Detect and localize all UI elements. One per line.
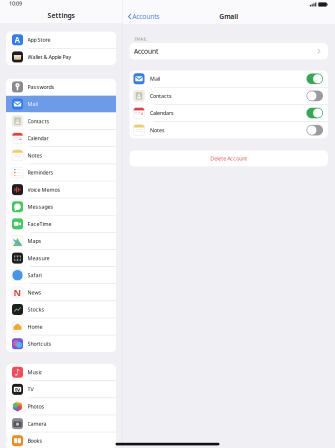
button[interactable]: Mail — [129, 70, 328, 87]
button[interactable]: ♪ — [6, 364, 116, 380]
button[interactable]: Reminders — [6, 164, 116, 181]
staticText: Reminders — [27, 169, 53, 176]
staticText: Measure — [27, 255, 49, 262]
button[interactable]: Shortcuts — [6, 335, 116, 352]
button[interactable]: Wallet & Apple Pay — [6, 49, 116, 65]
button[interactable]: Delete Account — [129, 150, 328, 166]
staticText: Wallet & Apple Pay — [27, 53, 71, 60]
button[interactable]: FaceTime — [6, 216, 116, 232]
staticText: Mail — [150, 75, 160, 82]
staticText: tv — [15, 386, 20, 393]
button[interactable]: Stocks — [6, 301, 116, 318]
staticText: Notes — [150, 127, 165, 134]
button[interactable]: Calendars — [129, 105, 328, 121]
staticText: A — [14, 34, 20, 45]
button[interactable]: Notes — [129, 122, 328, 138]
staticText: N — [13, 286, 21, 299]
button[interactable]: N — [6, 284, 116, 301]
staticText: Delete Account — [210, 155, 247, 162]
staticText: Music — [27, 369, 42, 376]
staticText: Calendars — [150, 109, 174, 117]
staticText: Voice Memos — [27, 186, 60, 193]
staticText: Messages — [27, 203, 53, 210]
staticText: Books — [27, 437, 42, 444]
button[interactable]: Accounts — [122, 8, 165, 24]
button[interactable]: Camera — [6, 415, 116, 432]
staticText: Shortcuts — [27, 340, 51, 347]
button[interactable]: Account — [129, 43, 328, 59]
button[interactable]: Books — [6, 432, 116, 448]
button[interactable]: Voice Memos — [6, 181, 116, 198]
button[interactable]: Messages — [6, 198, 116, 215]
staticText: Calendar — [27, 135, 48, 142]
button[interactable]: Measure — [6, 250, 116, 266]
staticText: Contacts — [150, 92, 172, 99]
staticText: Gmail — [219, 12, 238, 21]
staticText: Contacts — [27, 118, 49, 125]
staticText: 10:09 — [9, 0, 22, 7]
button[interactable]: Safari — [6, 267, 116, 283]
button[interactable]: Contacts — [129, 88, 328, 104]
staticText: Notes — [27, 152, 42, 159]
staticText: Account — [134, 47, 158, 56]
staticText: Stocks — [27, 306, 44, 313]
button[interactable]: Maps — [6, 233, 116, 249]
staticText: News — [27, 289, 41, 296]
staticText: Passwords — [27, 83, 54, 90]
staticText: TV — [27, 386, 33, 393]
button[interactable]: Photos — [6, 398, 116, 415]
button[interactable]: tv — [6, 381, 116, 398]
staticText: ♪ — [14, 367, 20, 377]
button[interactable]: Calendar — [6, 130, 116, 146]
button[interactable]: Home — [6, 318, 116, 335]
staticText: Safari — [27, 272, 41, 279]
button[interactable]: Passwords — [6, 79, 116, 95]
staticText: Maps — [27, 237, 41, 245]
button[interactable]: Contacts — [6, 113, 116, 129]
staticText: Settings — [47, 11, 74, 20]
button[interactable]: Mail — [6, 96, 116, 112]
staticText: Photos — [27, 403, 44, 410]
staticText: Camera — [27, 420, 46, 427]
staticText: App Store — [27, 36, 50, 43]
staticText: EMAIL — [134, 36, 146, 42]
button[interactable]: Notes — [6, 147, 116, 164]
staticText: FaceTime — [27, 220, 51, 227]
button[interactable]: A — [6, 31, 116, 48]
staticText: Mail — [27, 100, 37, 108]
staticText: Home — [27, 323, 42, 330]
staticText: Accounts — [132, 12, 159, 21]
